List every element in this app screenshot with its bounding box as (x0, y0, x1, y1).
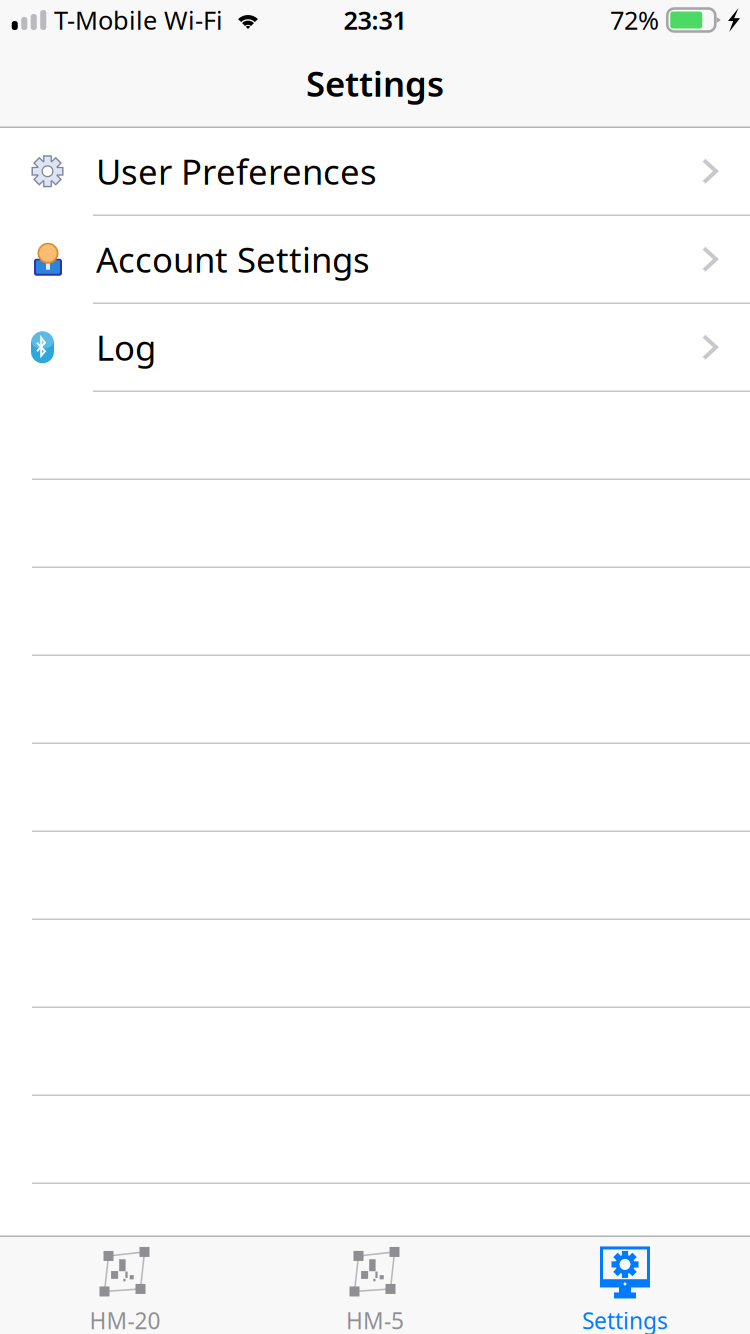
staticText: Settings (306, 60, 444, 106)
button[interactable]: Log (0, 304, 750, 392)
staticText: 72% (610, 3, 659, 37)
staticText: T-Mobile Wi-Fi (54, 3, 223, 37)
button[interactable]: HM-20 (0, 1237, 250, 1334)
staticText: HM-20 (89, 1305, 160, 1334)
button[interactable]: HM-5 (250, 1237, 500, 1334)
staticText: Settings (582, 1305, 668, 1334)
button[interactable]: User Preferences (0, 128, 750, 216)
button[interactable]: Settings (500, 1237, 750, 1334)
button[interactable]: Account Settings (0, 216, 750, 304)
staticText: Log (96, 324, 156, 370)
staticText: 23:31 (343, 3, 406, 37)
staticText: HM-5 (346, 1305, 404, 1334)
staticText: User Preferences (96, 148, 377, 194)
staticText: Account Settings (96, 236, 370, 282)
